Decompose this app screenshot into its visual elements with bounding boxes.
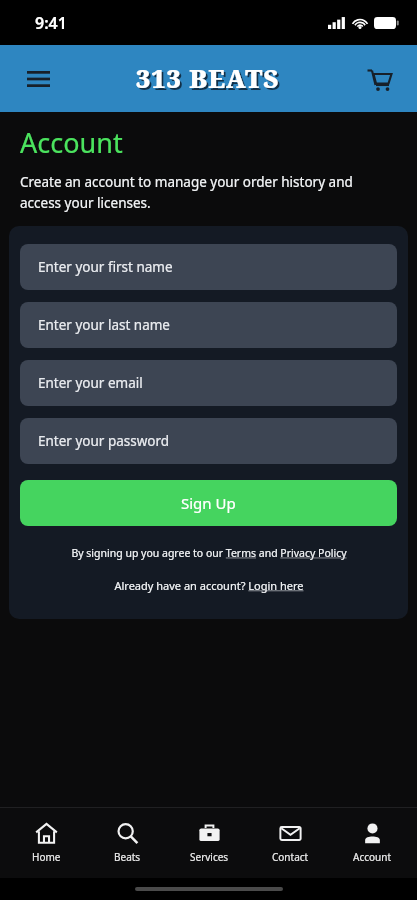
staticText: Home [32,850,61,864]
staticText: Already have an account? Login here [114,578,304,593]
staticText: Enter your email [38,374,143,392]
staticText: 313 BEATS [138,63,282,97]
button[interactable]: By signing up you agree to our Terms and… [20,546,397,560]
button[interactable]: Services [173,816,245,870]
button[interactable]: Beats [91,816,163,870]
staticText: Services [190,850,229,864]
button[interactable]: Account [336,816,408,870]
staticText: Sign Up [181,493,236,513]
button[interactable]: Enter your email [20,360,397,406]
button[interactable]: Enter your last name [20,302,397,348]
button[interactable]: Home [10,816,82,870]
staticText: Enter your password [38,432,170,450]
staticText: Create an account to manage your order h… [20,173,391,212]
staticText: Enter your last name [38,316,170,334]
staticText: Account [20,124,123,161]
staticText: 9:41 [35,12,67,34]
button[interactable]: Already have an account? Login here [20,578,397,593]
button[interactable]: Sign Up [20,480,397,526]
button[interactable]: Cart [359,59,399,99]
button[interactable]: Enter your password [20,418,397,464]
staticText: Account [353,850,392,864]
staticText: By signing up you agree to our Terms and… [71,546,347,560]
staticText: Beats [114,850,141,864]
staticText: 313 BEATS [136,61,280,95]
staticText: Contact [272,850,309,864]
button[interactable]: Enter your first name [20,244,397,290]
staticText: Enter your first name [38,258,173,276]
button[interactable]: Contact [254,816,326,870]
button[interactable]: Menu [18,59,58,99]
